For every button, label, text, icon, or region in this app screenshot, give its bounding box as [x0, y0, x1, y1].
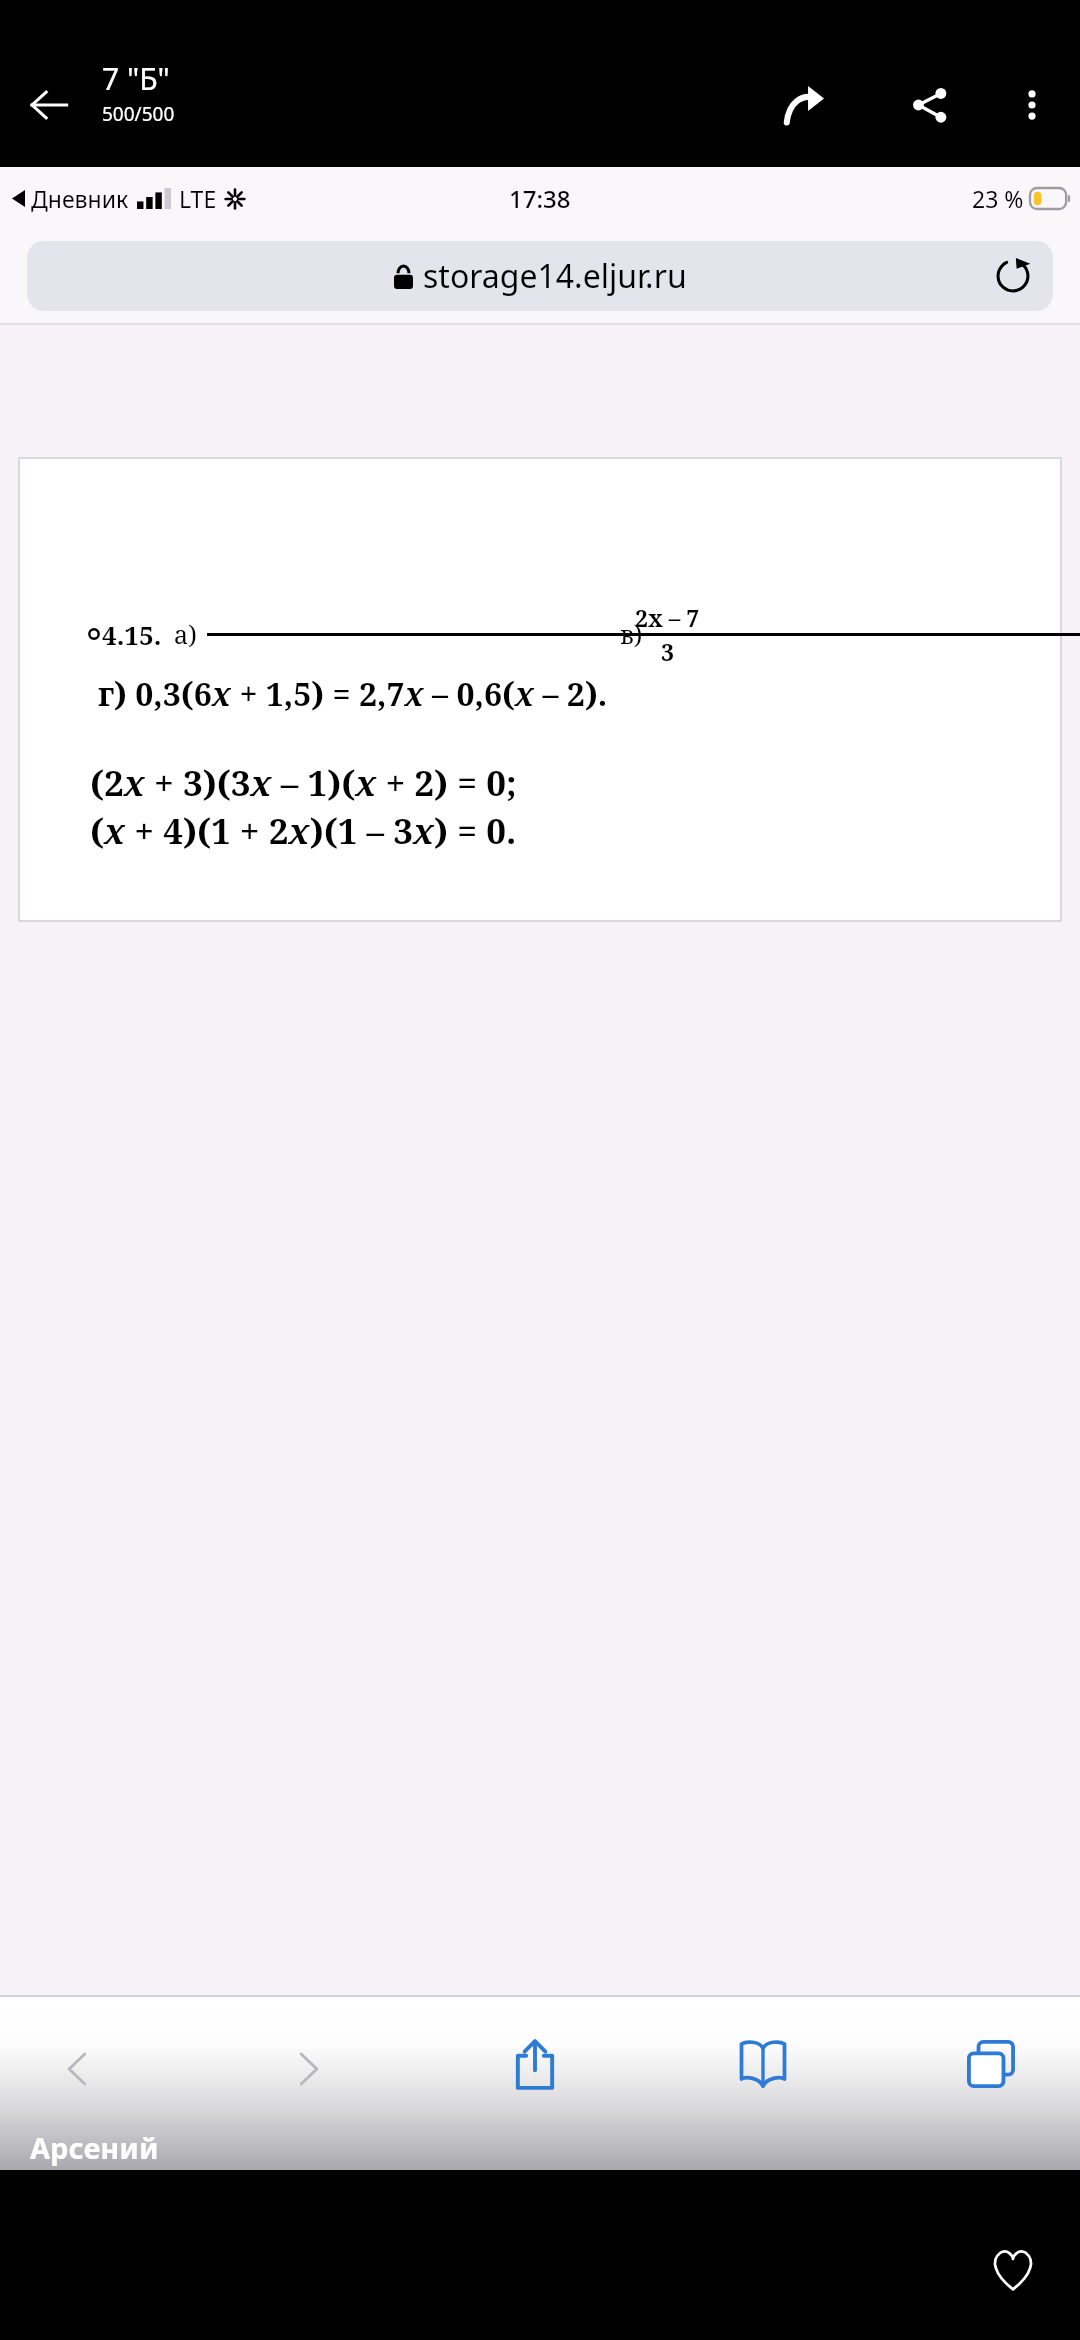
- staticText: LTE: [179, 183, 217, 214]
- staticText: Арсений: [30, 2128, 159, 2167]
- staticText: 23 %: [972, 183, 1024, 214]
- button[interactable]: Back: [12, 68, 86, 142]
- staticText: 7 "Б": [102, 58, 170, 99]
- staticText: (x + 4)(1 + 2x)(1 – 3x) = 0.: [90, 807, 517, 855]
- staticText: 17:38: [509, 182, 571, 215]
- button[interactable]: Share: [895, 70, 965, 140]
- staticText: в): [620, 617, 643, 651]
- button[interactable]: Back: [36, 2027, 120, 2111]
- staticText: г) 0,3(6x + 1,5) = 2,7x – 0,6(x – 2).: [98, 672, 608, 716]
- button[interactable]: Like: [975, 2232, 1051, 2308]
- staticText: 4.15.: [102, 617, 162, 652]
- staticText: (2x + 3)(3x – 1)(x + 2) = 0;: [90, 759, 517, 807]
- button[interactable]: Tabs: [948, 2021, 1034, 2107]
- staticText: Дневник: [31, 183, 129, 214]
- button[interactable]: Forward: [266, 2027, 350, 2111]
- button[interactable]: Forward: [770, 70, 840, 140]
- staticText: 2x – 7: [635, 602, 700, 633]
- staticText: 3: [661, 636, 674, 667]
- button[interactable]: storage14.eljur.ru: [27, 241, 1053, 311]
- button[interactable]: Share: [492, 2021, 578, 2107]
- button[interactable]: More options: [997, 70, 1067, 140]
- staticText: 500/500: [102, 101, 175, 127]
- button[interactable]: Reload: [981, 244, 1045, 308]
- staticText: storage14.eljur.ru: [423, 254, 687, 298]
- staticText: а): [174, 617, 197, 651]
- button[interactable]: Bookmarks: [720, 2021, 806, 2107]
